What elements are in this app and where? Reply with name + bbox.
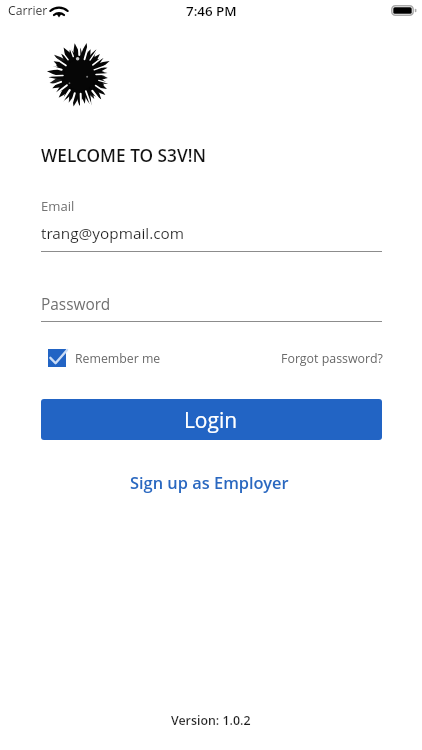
button[interactable]: Forgot password? [275,343,382,373]
staticText: Login [184,406,238,434]
staticText: trang@yopmail.com [41,223,184,244]
other: Battery full [391,5,417,17]
staticText: Carrier [8,2,48,19]
staticText: Remember me [75,350,161,367]
staticText: 7:46 PM [186,2,237,20]
button[interactable]: Sign up as Employer [120,465,302,495]
staticText: Forgot password? [281,350,383,367]
button[interactable]: Remember me [41,343,176,373]
staticText: Email [41,197,75,215]
button[interactable]: Login [41,399,382,440]
staticText: Sign up as Employer [130,471,289,493]
staticText: Password [41,294,111,315]
staticText: Version: 1.0.2 [171,712,251,729]
other: Wi-Fi signal [51,5,67,17]
staticText: WELCOME TO S3V!N [41,144,206,167]
